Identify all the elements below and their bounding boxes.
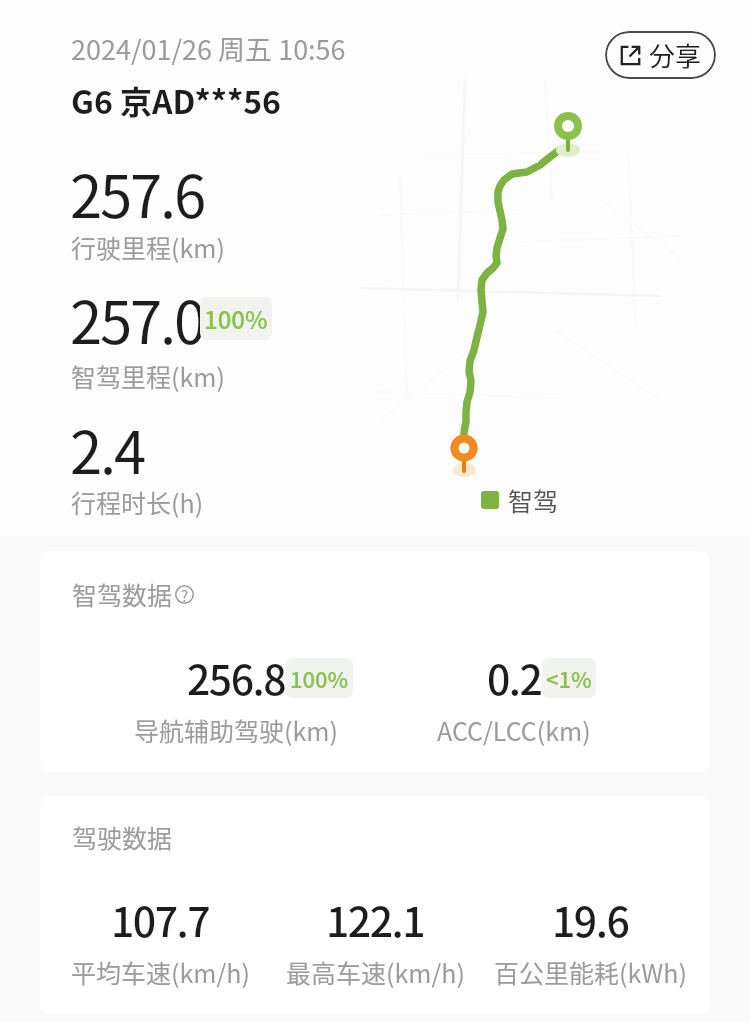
other: Share [620, 45, 641, 66]
staticText: 107.7 [111, 889, 210, 948]
staticText: ? [181, 585, 189, 604]
other: Help [175, 585, 194, 604]
staticText: 驾驶数据 [72, 819, 173, 855]
staticText: <1% [546, 662, 592, 694]
staticText: 2.4 [70, 407, 144, 491]
staticText: 122.1 [326, 889, 425, 948]
staticText: 行程时长(h) [71, 484, 204, 520]
staticText: 百公里能耗(kWh) [494, 954, 687, 990]
staticText: 2024/01/26 周五 10:56 [71, 29, 346, 68]
staticText: 导航辅助驾驶(km) [134, 712, 338, 748]
staticText: 257.6 [70, 151, 204, 235]
staticText: 最高车速(km/h) [286, 954, 465, 990]
staticText: G6 京AD***56 [71, 77, 281, 123]
staticText: 0.2 [487, 647, 542, 706]
staticText: 行驶里程(km) [71, 229, 225, 265]
staticText: 100% [204, 301, 268, 336]
staticText: 19.6 [552, 889, 629, 948]
staticText: 智驾数据 [72, 576, 173, 612]
staticText: ACC/LCC(km) [437, 712, 591, 748]
button[interactable]: Share [605, 31, 716, 79]
staticText: 257.0 [70, 277, 204, 361]
staticText: 256.8 [187, 647, 286, 706]
staticText: 分享 [649, 36, 702, 74]
staticText: 平均车速(km/h) [71, 954, 250, 990]
staticText: 智驾里程(km) [71, 358, 225, 394]
staticText: 智驾 [508, 482, 559, 518]
staticText: 100% [290, 662, 349, 694]
